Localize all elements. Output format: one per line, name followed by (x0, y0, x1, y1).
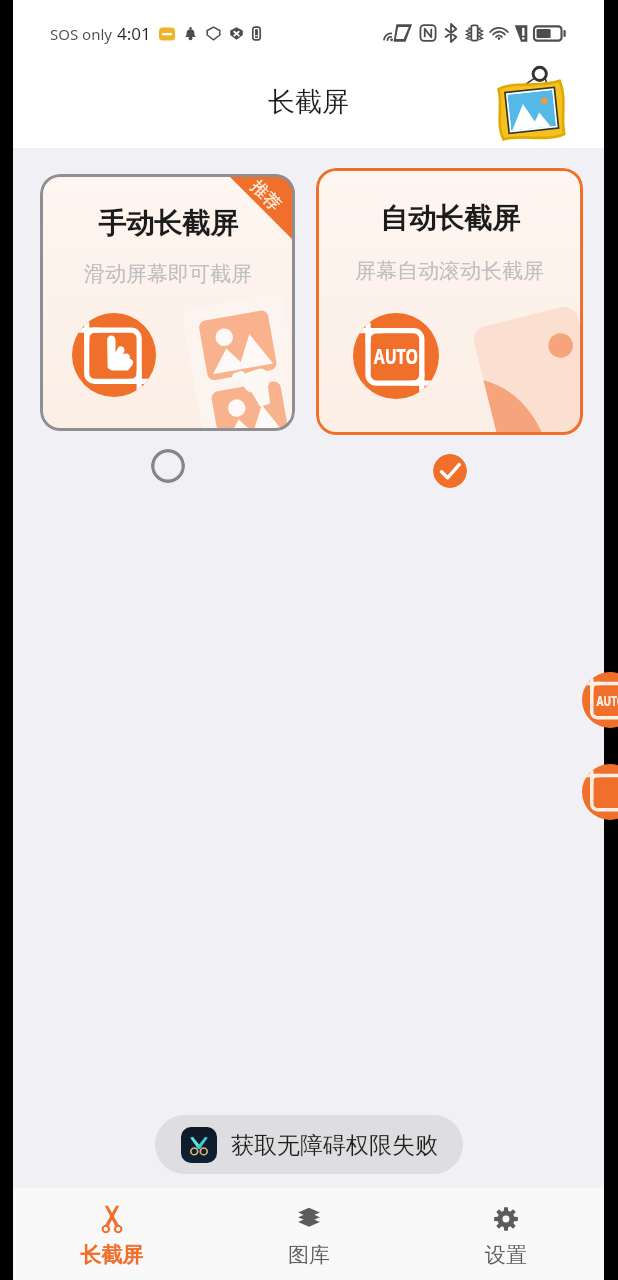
staticText: 推荐 (247, 176, 285, 215)
staticText: 滑动屏幕即可截屏 (84, 261, 252, 287)
button[interactable]: 设置 (407, 1188, 604, 1280)
staticText: 获取无障碍权限失败 (231, 1131, 438, 1160)
staticText: 4:01 (117, 22, 151, 45)
staticText: 设置 (485, 1242, 527, 1268)
staticText: SOS only (50, 24, 112, 44)
button[interactable]: 图库 (210, 1188, 407, 1280)
button[interactable]: Selected (433, 454, 467, 488)
button[interactable]: 长截屏 (13, 1188, 210, 1280)
staticText: AUTO (374, 340, 418, 370)
button[interactable]: 手动长截屏 (40, 174, 295, 431)
staticText: 手动长截屏 (98, 206, 238, 241)
staticText: 图库 (288, 1242, 330, 1268)
button[interactable]: Gallery (485, 55, 577, 147)
button[interactable]: Not selected (151, 449, 185, 483)
button[interactable]: Auto long screenshot (582, 672, 618, 728)
button[interactable]: 自动长截屏 (316, 168, 583, 435)
button[interactable]: Manual long screenshot (582, 764, 618, 820)
staticText: 屏幕自动滚动长截屏 (355, 258, 544, 284)
staticText: 长截屏 (268, 85, 349, 119)
staticText: 长截屏 (80, 1242, 143, 1268)
staticText: AUTO (597, 691, 618, 710)
staticText: 自动长截屏 (380, 201, 520, 236)
